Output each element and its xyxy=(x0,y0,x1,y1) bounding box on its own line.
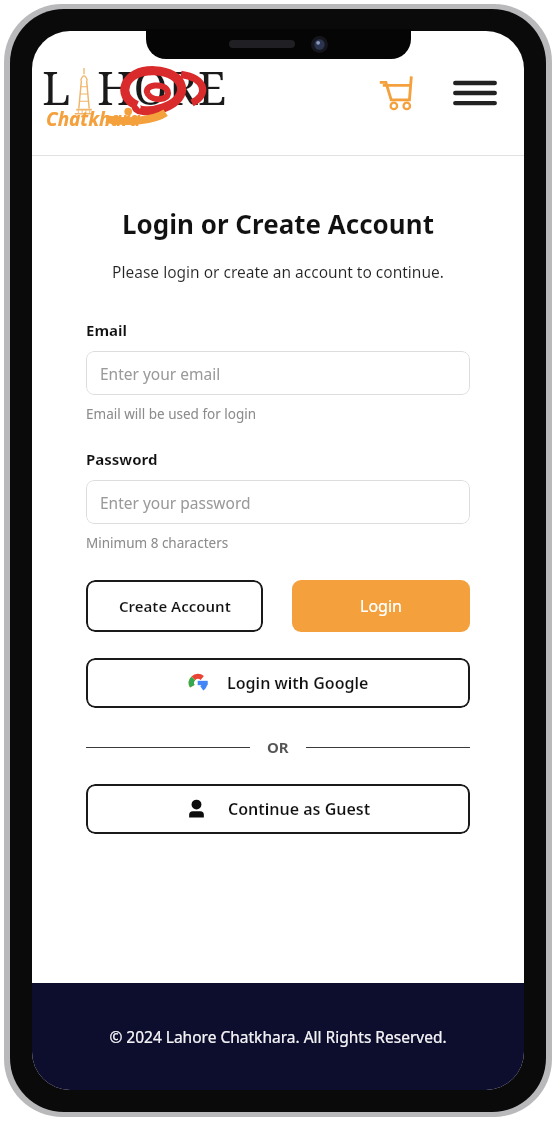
staticText: HORE xyxy=(97,56,227,119)
button[interactable]: Cart xyxy=(368,66,422,120)
staticText: © 2024 Lahore Chatkhara. All Rights Rese… xyxy=(109,1026,447,1047)
button[interactable]: Login xyxy=(292,580,470,632)
button[interactable]: Enter your email xyxy=(86,351,470,395)
staticText: Enter your email xyxy=(100,363,221,384)
staticText: L xyxy=(42,56,71,119)
staticText: Enter your password xyxy=(100,492,251,513)
staticText: Login with Google xyxy=(227,672,369,694)
staticText: Chatkhara xyxy=(46,106,141,132)
staticText: Email will be used for login xyxy=(86,405,257,423)
button[interactable]: Continue as Guest xyxy=(86,784,470,834)
button[interactable]: Menu xyxy=(448,66,502,120)
staticText: Password xyxy=(86,449,158,469)
button[interactable]: Create Account xyxy=(86,580,263,632)
button[interactable]: Login with Google xyxy=(86,658,470,708)
button[interactable]: Enter your password xyxy=(86,480,470,524)
staticText: Please login or create an account to con… xyxy=(112,261,444,282)
staticText: Login or Create Account xyxy=(122,206,434,241)
staticText: Create Account xyxy=(119,596,231,616)
staticText: Login xyxy=(360,595,402,617)
staticText: Continue as Guest xyxy=(228,798,371,820)
staticText: OR xyxy=(267,737,289,757)
staticText: Email xyxy=(86,320,127,340)
staticText: Minimum 8 characters xyxy=(86,534,229,552)
